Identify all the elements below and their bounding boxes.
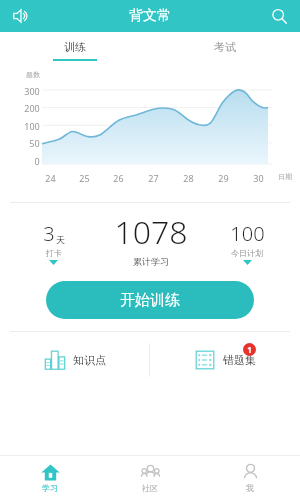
staticText: 日期 xyxy=(278,172,292,181)
staticText: 天 xyxy=(56,234,65,245)
staticText: 考试 xyxy=(214,40,236,54)
staticText: 24 xyxy=(45,172,56,184)
button[interactable]: 开始训练 xyxy=(46,281,254,319)
button[interactable]: 知识点 xyxy=(0,332,149,388)
staticText: 100 xyxy=(230,220,265,247)
staticText: 训练 xyxy=(64,40,86,54)
staticText: 3 xyxy=(43,220,55,247)
staticText: 1 xyxy=(247,344,252,355)
staticText: 错题集 xyxy=(223,353,256,367)
staticText: 300 xyxy=(24,85,40,97)
button[interactable]: 社区 xyxy=(100,456,200,500)
button[interactable]: Search xyxy=(264,1,294,31)
staticText: 打卡 xyxy=(46,248,62,258)
button[interactable]: 考试 xyxy=(150,32,300,64)
button[interactable]: 训练 xyxy=(0,32,150,64)
staticText: 题数 xyxy=(26,70,40,79)
staticText: 26 xyxy=(113,172,124,184)
staticText: 29 xyxy=(218,172,229,184)
button[interactable]: 错题集 xyxy=(150,332,300,388)
staticText: 27 xyxy=(148,172,159,184)
staticText: 学习 xyxy=(42,483,58,493)
staticText: 100 xyxy=(24,120,40,132)
staticText: 我 xyxy=(246,483,254,493)
button[interactable]: 我 xyxy=(200,456,300,500)
staticText: 知识点 xyxy=(73,353,106,367)
staticText: 今日计划 xyxy=(231,248,263,258)
staticText: 社区 xyxy=(142,483,158,493)
button[interactable]: Sound xyxy=(6,1,36,31)
staticText: 累计学习 xyxy=(133,256,169,267)
staticText: 背文常 xyxy=(129,7,171,25)
staticText: 25 xyxy=(79,172,90,184)
staticText: 0 xyxy=(34,155,40,167)
staticText: 200 xyxy=(24,102,40,114)
staticText: 50 xyxy=(29,137,40,149)
staticText: 28 xyxy=(183,172,194,184)
button[interactable]: 学习 xyxy=(0,456,100,500)
staticText: 30 xyxy=(253,172,264,184)
staticText: 1078 xyxy=(114,210,188,254)
staticText: 开始训练 xyxy=(120,291,180,310)
